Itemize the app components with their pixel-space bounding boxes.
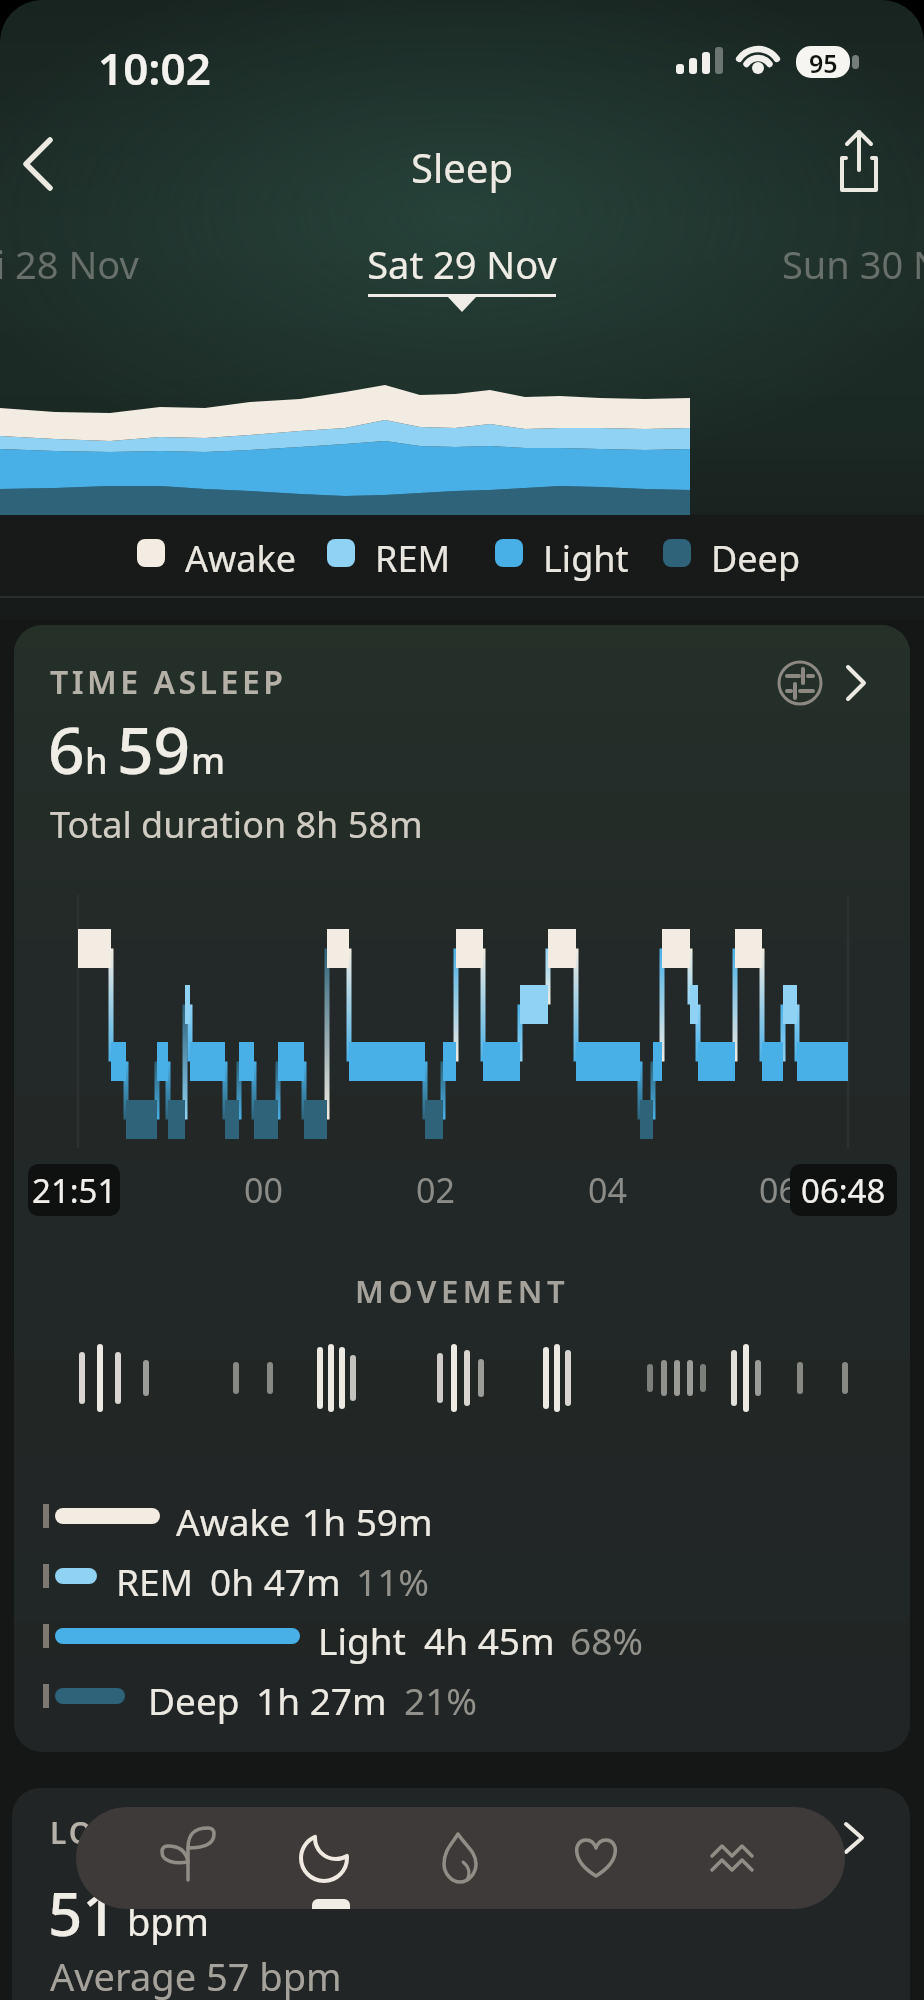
staticText: MOVEMENT (0, 1270, 924, 1312)
staticText: TIME ASLEEP (50, 660, 287, 704)
staticText: Awake (176, 1496, 291, 1546)
button[interactable] (393, 1807, 529, 1909)
staticText: 00 (244, 1167, 283, 1213)
staticText: 4h 45m (424, 1615, 555, 1665)
staticText: 04 (588, 1167, 627, 1213)
button[interactable] (665, 1807, 801, 1909)
staticText: 59 (117, 706, 191, 793)
staticText: 10:02 (98, 38, 211, 98)
staticText: Total duration 8h 58m (50, 800, 423, 849)
staticText: 68% (570, 1615, 644, 1665)
staticText: Sun 30 Nov (782, 238, 924, 290)
button[interactable] (828, 118, 896, 198)
staticText: 0h 47m (210, 1556, 341, 1606)
staticText: Sat 29 Nov (0, 238, 924, 290)
staticText: LOWEST HEART RATE (50, 1812, 402, 1853)
staticText: m (191, 736, 226, 785)
staticText: 11% (356, 1556, 430, 1606)
staticText: 1h 59m (302, 1496, 433, 1546)
button[interactable] (529, 1807, 665, 1909)
staticText: Deep (711, 534, 801, 583)
staticText: 51 (48, 1872, 117, 1954)
staticText: Fri 28 Nov (0, 238, 139, 290)
staticText: Average 57 bpm (50, 1950, 342, 2000)
button[interactable] (770, 230, 924, 300)
staticText: 95 (809, 46, 838, 78)
staticText: REM (116, 1556, 194, 1606)
staticText: REM (375, 534, 451, 583)
staticText: bpm (117, 1895, 210, 1947)
staticText: 1h 27m (256, 1675, 387, 1725)
staticText: 21:51 (32, 1168, 117, 1213)
staticText: Light (543, 534, 629, 583)
staticText: 02 (416, 1167, 455, 1213)
staticText: Awake (185, 534, 297, 583)
staticText: Deep (148, 1675, 240, 1725)
staticText: Light (318, 1615, 406, 1665)
button[interactable] (120, 1807, 257, 1909)
staticText: Sleep (0, 140, 924, 194)
staticText: 6 (48, 706, 85, 793)
button[interactable] (360, 230, 564, 300)
staticText: 06 (759, 1167, 798, 1213)
button[interactable] (8, 128, 72, 200)
staticText: h (85, 736, 117, 785)
button[interactable] (14, 625, 910, 1752)
button[interactable] (0, 230, 160, 300)
staticText: 21% (404, 1675, 478, 1725)
staticText: 06:48 (801, 1168, 886, 1213)
button[interactable] (257, 1807, 393, 1909)
button[interactable] (12, 1788, 910, 2000)
